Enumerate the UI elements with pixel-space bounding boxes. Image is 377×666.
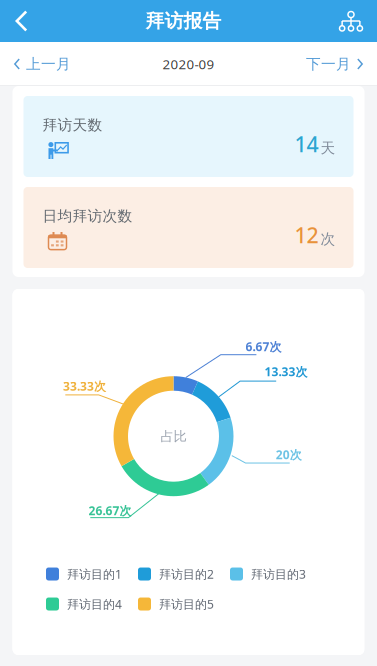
button[interactable]: 返回 [0,0,42,42]
staticText: 拜访天数 [42,116,102,134]
staticText: 日均拜访次数 [42,207,132,225]
staticText: 20次 [276,446,302,462]
staticText: 拜访目的1 [67,566,122,582]
staticText: 拜访目的2 [159,566,214,582]
button[interactable]: 上一月 [0,42,85,86]
staticText: 占比 [160,428,186,444]
staticText: 上一月 [26,55,71,73]
staticText: 6.67次 [245,338,281,354]
staticText: 13.33次 [265,363,308,379]
staticText: 拜访目的3 [251,566,306,582]
staticText: 下一月 [306,55,351,73]
staticText: 12 [294,221,318,249]
staticText: 拜访目的5 [159,596,214,612]
staticText: 33.33次 [63,378,106,394]
button[interactable]: 组织架构 [325,0,377,42]
button[interactable]: 下一月 [292,42,377,86]
staticText: 14 [294,130,318,158]
staticText: 天 [320,139,335,157]
staticText: 拜访目的4 [67,596,122,612]
staticText: 2020-09 [162,55,214,73]
staticText: 26.67次 [89,502,132,518]
staticText: 拜访报告 [145,9,221,32]
staticText: 次 [320,230,335,248]
